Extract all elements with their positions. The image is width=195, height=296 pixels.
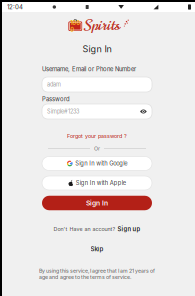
button[interactable]: Sign In with Google xyxy=(42,156,152,170)
button[interactable]: Skip xyxy=(82,244,112,254)
staticText: Skip xyxy=(90,245,103,253)
staticText: Sign In xyxy=(86,199,108,207)
staticText: Sign up xyxy=(117,225,140,233)
staticText: Sign In xyxy=(82,43,111,54)
staticText: Forgot your password ? xyxy=(67,133,127,139)
button[interactable]: Forgot your password ? xyxy=(42,131,152,141)
staticText: Don't Have an account? xyxy=(53,226,115,232)
staticText: adam xyxy=(47,81,61,88)
staticText: Spirits xyxy=(84,14,120,36)
button[interactable]: adam xyxy=(42,77,152,92)
staticText: 1000 xyxy=(70,20,80,33)
staticText: Sign In with Apple xyxy=(76,179,126,186)
button[interactable]: Sign In xyxy=(42,196,152,210)
staticText: Simple#1233 xyxy=(47,108,79,115)
staticText: Password xyxy=(42,95,70,103)
staticText: Sign In with Google xyxy=(75,160,127,167)
staticText: Username, Email or Phone Number xyxy=(42,65,136,73)
staticText: Or xyxy=(94,145,100,152)
button[interactable]: Sign up xyxy=(117,225,140,233)
staticText: By using this service, I agree that I am… xyxy=(39,268,155,280)
button[interactable]: Simple#1233 xyxy=(42,104,152,119)
button[interactable]: Sign In with Apple xyxy=(42,176,152,190)
staticText: 12:04 xyxy=(7,3,23,11)
